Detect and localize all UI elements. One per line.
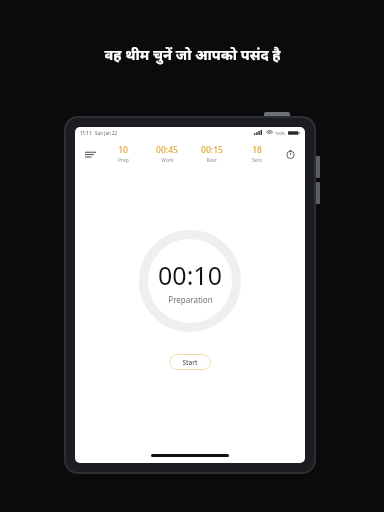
staticText: Sets	[252, 157, 262, 164]
button[interactable]: Timer settings	[279, 143, 301, 165]
staticText: 11:11	[80, 130, 92, 136]
staticText: Start	[182, 358, 198, 367]
staticText: 100%	[275, 131, 286, 136]
staticText: वह थीम चुनें जो आपको पसंद है	[104, 44, 281, 64]
staticText: 10	[118, 144, 128, 156]
staticText: Preparation	[168, 294, 213, 305]
button[interactable]: Menu	[79, 143, 101, 165]
staticText: Work	[161, 157, 174, 164]
button[interactable]: 00:45	[145, 142, 189, 166]
staticText: 00:10	[158, 258, 222, 292]
staticText: 00:45	[156, 144, 178, 156]
button[interactable]: 18	[234, 142, 279, 166]
staticText: 00:15	[201, 144, 223, 156]
button[interactable]: 00:15	[189, 142, 234, 166]
staticText: 18	[252, 144, 262, 156]
staticText: Sun Jan 22	[95, 130, 118, 136]
button[interactable]: Start	[169, 354, 211, 370]
button[interactable]: 10	[101, 142, 145, 166]
staticText: Prep	[118, 157, 129, 164]
staticText: Rest	[206, 157, 217, 164]
